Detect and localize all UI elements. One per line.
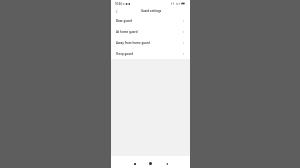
button[interactable]: Sleep guard bbox=[111, 48, 190, 59]
button[interactable]: At home guard bbox=[111, 26, 190, 37]
staticText: Away from home guard bbox=[116, 40, 150, 44]
button[interactable]: Back bbox=[111, 7, 122, 15]
button[interactable]: Home bbox=[146, 159, 155, 168]
button[interactable]: Base guard bbox=[111, 15, 190, 26]
staticText: Sleep guard bbox=[116, 51, 133, 55]
button[interactable]: Back bbox=[162, 159, 171, 168]
staticText: At home guard bbox=[116, 29, 138, 33]
staticText: Guard settings bbox=[141, 9, 161, 13]
button[interactable]: Recent apps bbox=[130, 159, 139, 168]
staticText: Base guard bbox=[116, 18, 132, 22]
staticText: 10:04 bbox=[115, 2, 122, 5]
button[interactable]: Away from home guard bbox=[111, 37, 190, 48]
